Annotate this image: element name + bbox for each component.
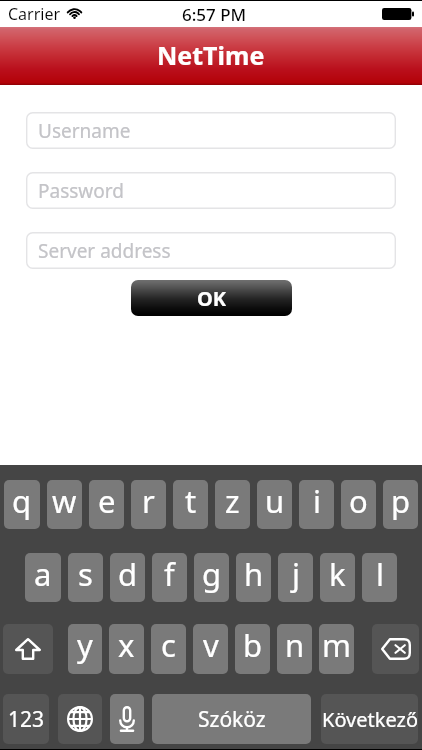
staticText: w xyxy=(52,480,77,522)
staticText: e xyxy=(98,480,116,522)
staticText: n xyxy=(285,624,305,666)
button[interactable]: d xyxy=(110,553,145,602)
staticText: r xyxy=(142,480,155,522)
staticText: y xyxy=(77,624,93,666)
button[interactable]: 123 xyxy=(3,694,49,744)
staticText: m xyxy=(322,624,351,666)
staticText: k xyxy=(329,553,346,595)
button[interactable]: Change keyboard language xyxy=(58,694,102,744)
staticText: d xyxy=(118,553,138,595)
staticText: v xyxy=(203,624,219,666)
button[interactable]: Következő xyxy=(321,694,418,744)
button[interactable]: i xyxy=(299,480,334,529)
button[interactable]: k xyxy=(320,553,355,602)
staticText: j xyxy=(292,553,300,595)
staticText: f xyxy=(164,553,175,595)
staticText: Következő xyxy=(322,706,418,733)
staticText: x xyxy=(118,624,135,666)
staticText: 123 xyxy=(8,705,45,734)
staticText: OK xyxy=(197,285,227,312)
staticText: l xyxy=(376,553,384,595)
staticText: Szóköz xyxy=(198,705,266,734)
staticText: g xyxy=(202,553,222,595)
staticText: c xyxy=(161,624,176,666)
staticText: Carrier xyxy=(8,3,61,25)
button[interactable]: Username xyxy=(26,112,396,149)
staticText: q xyxy=(12,480,32,522)
button[interactable]: r xyxy=(131,480,166,529)
button[interactable]: v xyxy=(193,624,228,674)
staticText: 6:57 PM xyxy=(182,3,247,26)
staticText: Password xyxy=(38,178,124,204)
button[interactable]: o xyxy=(341,480,376,529)
button[interactable]: Password xyxy=(26,172,396,209)
button[interactable]: u xyxy=(257,480,292,529)
button[interactable]: Backspace xyxy=(372,624,419,674)
staticText: p xyxy=(391,480,411,522)
staticText: Username xyxy=(38,118,131,144)
button[interactable]: c xyxy=(151,624,186,674)
button[interactable]: a xyxy=(25,553,61,602)
button[interactable]: l xyxy=(362,553,397,602)
staticText: Server address xyxy=(38,238,171,264)
button[interactable]: h xyxy=(236,553,271,602)
button[interactable]: f xyxy=(152,553,187,602)
button[interactable]: Dictation xyxy=(110,694,144,744)
button[interactable]: OK xyxy=(131,280,292,316)
button[interactable]: p xyxy=(383,480,418,529)
staticText: b xyxy=(243,624,263,666)
staticText: s xyxy=(78,553,93,595)
button[interactable]: t xyxy=(173,480,208,529)
staticText: NetTime xyxy=(157,38,265,72)
button[interactable]: s xyxy=(68,553,103,602)
button[interactable]: x xyxy=(109,624,144,674)
button[interactable]: z xyxy=(215,480,250,529)
button[interactable]: Szóköz xyxy=(152,694,311,744)
staticText: i xyxy=(313,480,321,522)
staticText: h xyxy=(244,553,264,595)
button[interactable]: m xyxy=(319,624,354,674)
button[interactable]: y xyxy=(68,624,102,674)
staticText: u xyxy=(265,480,285,522)
button[interactable]: n xyxy=(277,624,312,674)
staticText: t xyxy=(185,480,197,522)
staticText: z xyxy=(225,480,240,522)
button[interactable]: w xyxy=(47,480,82,529)
button[interactable]: g xyxy=(194,553,229,602)
button[interactable]: Server address xyxy=(26,232,396,269)
button[interactable]: e xyxy=(89,480,124,529)
staticText: o xyxy=(349,480,368,522)
button[interactable]: b xyxy=(235,624,270,674)
button[interactable]: q xyxy=(4,480,40,529)
button[interactable]: j xyxy=(278,553,313,602)
staticText: a xyxy=(34,553,52,595)
button[interactable]: Shift xyxy=(3,624,53,674)
